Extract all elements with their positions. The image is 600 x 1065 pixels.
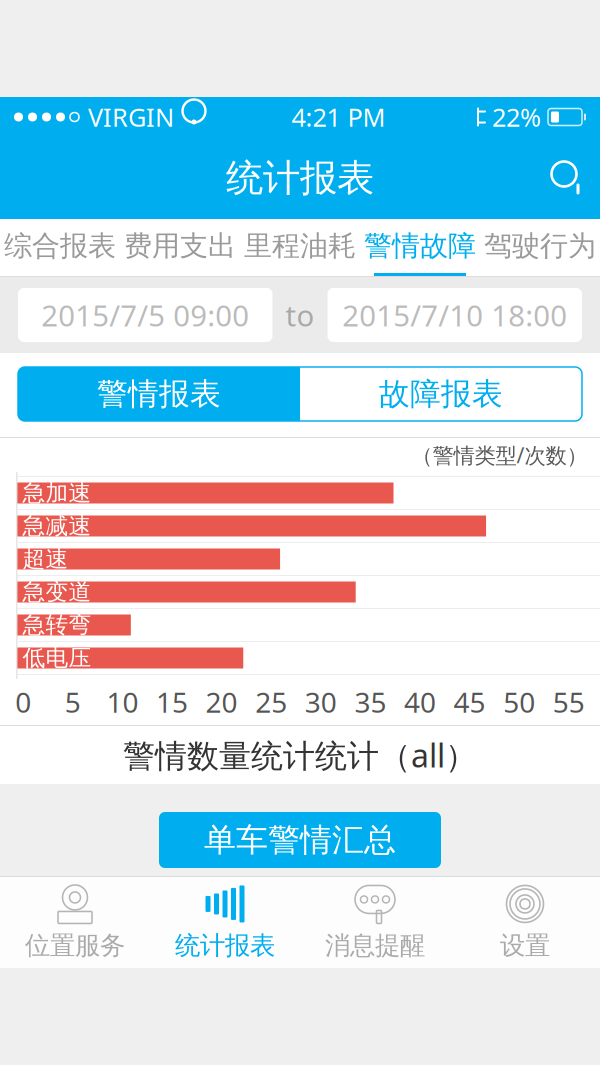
staticText: 设置 — [500, 930, 550, 961]
staticText: to — [285, 295, 314, 334]
staticText: 10 — [106, 683, 138, 721]
staticText: 急减速 — [22, 512, 91, 540]
button[interactable]: 故障报表 — [300, 367, 582, 421]
staticText: 2015/7/5 09:00 — [41, 295, 249, 334]
staticText: 驾驶行为 — [484, 229, 596, 263]
staticText: 急变道 — [22, 578, 91, 606]
button[interactable]: 位置服务 — [0, 876, 150, 968]
button[interactable]: 设置 — [450, 876, 600, 968]
staticText: 综合报表 — [4, 229, 116, 263]
staticText: 急加速 — [22, 479, 91, 507]
button[interactable]: 2015/7/10 18:00 — [327, 288, 582, 342]
staticText: 45 — [454, 683, 486, 721]
staticText: 25 — [255, 683, 287, 721]
staticText: 2015/7/10 18:00 — [342, 295, 567, 334]
staticText: 40 — [404, 683, 436, 721]
staticText: 30 — [305, 683, 337, 721]
button[interactable]: 综合报表 — [0, 219, 120, 276]
button[interactable]: 警情报表 — [18, 367, 300, 421]
staticText: 低电压 — [22, 644, 91, 672]
staticText: 故障报表 — [379, 375, 503, 413]
staticText: 统计报表 — [175, 930, 275, 961]
button[interactable]: 警情故障 — [360, 219, 480, 276]
button[interactable]: 单车警情汇总 — [159, 812, 441, 868]
staticText: 消息提醒 — [325, 930, 425, 961]
staticText: 50 — [503, 683, 535, 721]
staticText: 急转弯 — [22, 611, 91, 639]
staticText: 22% — [492, 100, 541, 134]
staticText: （警情类型/次数） — [412, 441, 588, 469]
staticText: 警情故障 — [364, 229, 476, 263]
staticText: 费用支出 — [124, 229, 236, 263]
staticText: 统计报表 — [226, 155, 374, 201]
staticText: 0 — [15, 683, 31, 721]
button[interactable]: 2015/7/5 09:00 — [18, 288, 272, 342]
staticText: 警情报表 — [97, 375, 221, 413]
button[interactable]: 统计报表 — [150, 876, 300, 968]
button[interactable]: 搜索 — [536, 147, 600, 209]
staticText: VIRGIN — [88, 100, 174, 134]
staticText: 超速 — [22, 545, 68, 573]
button[interactable]: 里程油耗 — [240, 219, 360, 276]
button[interactable]: 费用支出 — [120, 219, 240, 276]
staticText: 4:21 PM — [291, 100, 385, 134]
staticText: 5 — [65, 683, 81, 721]
button[interactable]: 驾驶行为 — [480, 219, 600, 276]
staticText: 15 — [156, 683, 188, 721]
staticText: 单车警情汇总 — [204, 820, 396, 860]
staticText: 20 — [206, 683, 238, 721]
staticText: 位置服务 — [25, 930, 125, 961]
staticText: 35 — [354, 683, 386, 721]
button[interactable]: 消息提醒 — [300, 876, 450, 968]
staticText: 55 — [553, 683, 585, 721]
staticText: 里程油耗 — [244, 229, 356, 263]
staticText: 警情数量统计统计（all） — [123, 734, 477, 776]
